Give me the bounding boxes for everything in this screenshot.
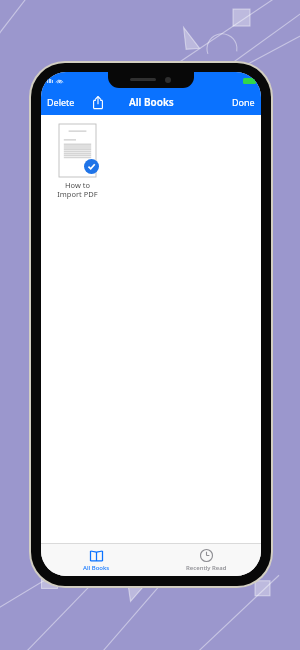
staticText: All Books xyxy=(83,564,110,572)
staticText: Recently Read xyxy=(186,564,227,572)
staticText: All Books xyxy=(129,95,174,109)
staticText: How to Import PDF xyxy=(57,180,98,200)
button[interactable]: Delete xyxy=(41,91,81,113)
button[interactable]: All Books xyxy=(41,544,151,576)
button[interactable]: How to Import PDF xyxy=(52,124,102,200)
staticText: ıllı xyxy=(47,77,54,85)
button[interactable]: Done xyxy=(226,91,261,113)
button[interactable]: Share xyxy=(88,92,108,112)
staticText: Delete xyxy=(47,96,75,108)
staticText: Done xyxy=(232,96,255,108)
button[interactable]: Recently Read xyxy=(151,544,261,576)
